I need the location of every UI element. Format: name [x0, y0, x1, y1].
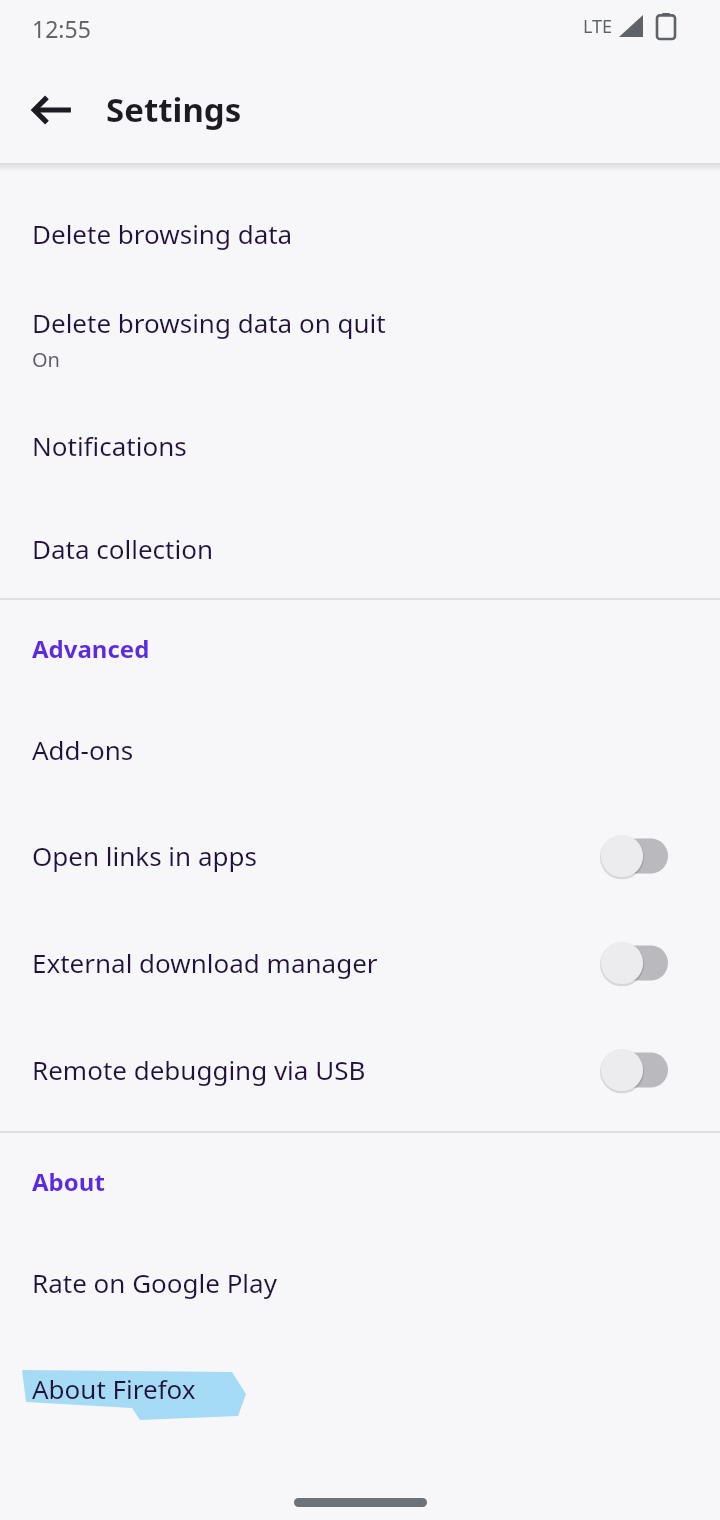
button[interactable]: Rate on Google Play — [0, 1229, 720, 1335]
staticText: Open links in apps — [32, 838, 600, 873]
button[interactable]: Data collection — [0, 498, 720, 598]
button[interactable]: Remote debugging via USB — [0, 1016, 720, 1123]
staticText: On — [32, 346, 60, 373]
staticText: Delete browsing data on quit — [32, 305, 386, 340]
staticText: Add-ons — [32, 732, 134, 767]
staticText: LTE — [583, 14, 613, 39]
button[interactable]: Notifications — [0, 392, 720, 498]
button[interactable]: Delete browsing data — [0, 180, 720, 286]
staticText: 12:55 — [32, 13, 91, 44]
staticText: Rate on Google Play — [32, 1265, 277, 1300]
button[interactable]: Add-ons — [0, 696, 720, 802]
staticText: About — [32, 1165, 105, 1198]
staticText: Remote debugging via USB — [32, 1052, 600, 1087]
button[interactable]: Back — [16, 74, 88, 146]
button[interactable]: Open links in apps — [0, 802, 720, 909]
staticText: Data collection — [32, 531, 213, 566]
button[interactable]: Delete browsing data on quit — [0, 286, 720, 392]
staticText: Advanced — [32, 632, 150, 665]
staticText: Notifications — [32, 428, 187, 463]
button[interactable]: External download manager — [0, 909, 720, 1016]
staticText: External download manager — [32, 945, 600, 980]
button[interactable]: About Firefox — [0, 1335, 720, 1441]
staticText: Delete browsing data — [32, 216, 293, 251]
staticText: About Firefox — [32, 1371, 196, 1406]
staticText: Settings — [106, 87, 242, 132]
